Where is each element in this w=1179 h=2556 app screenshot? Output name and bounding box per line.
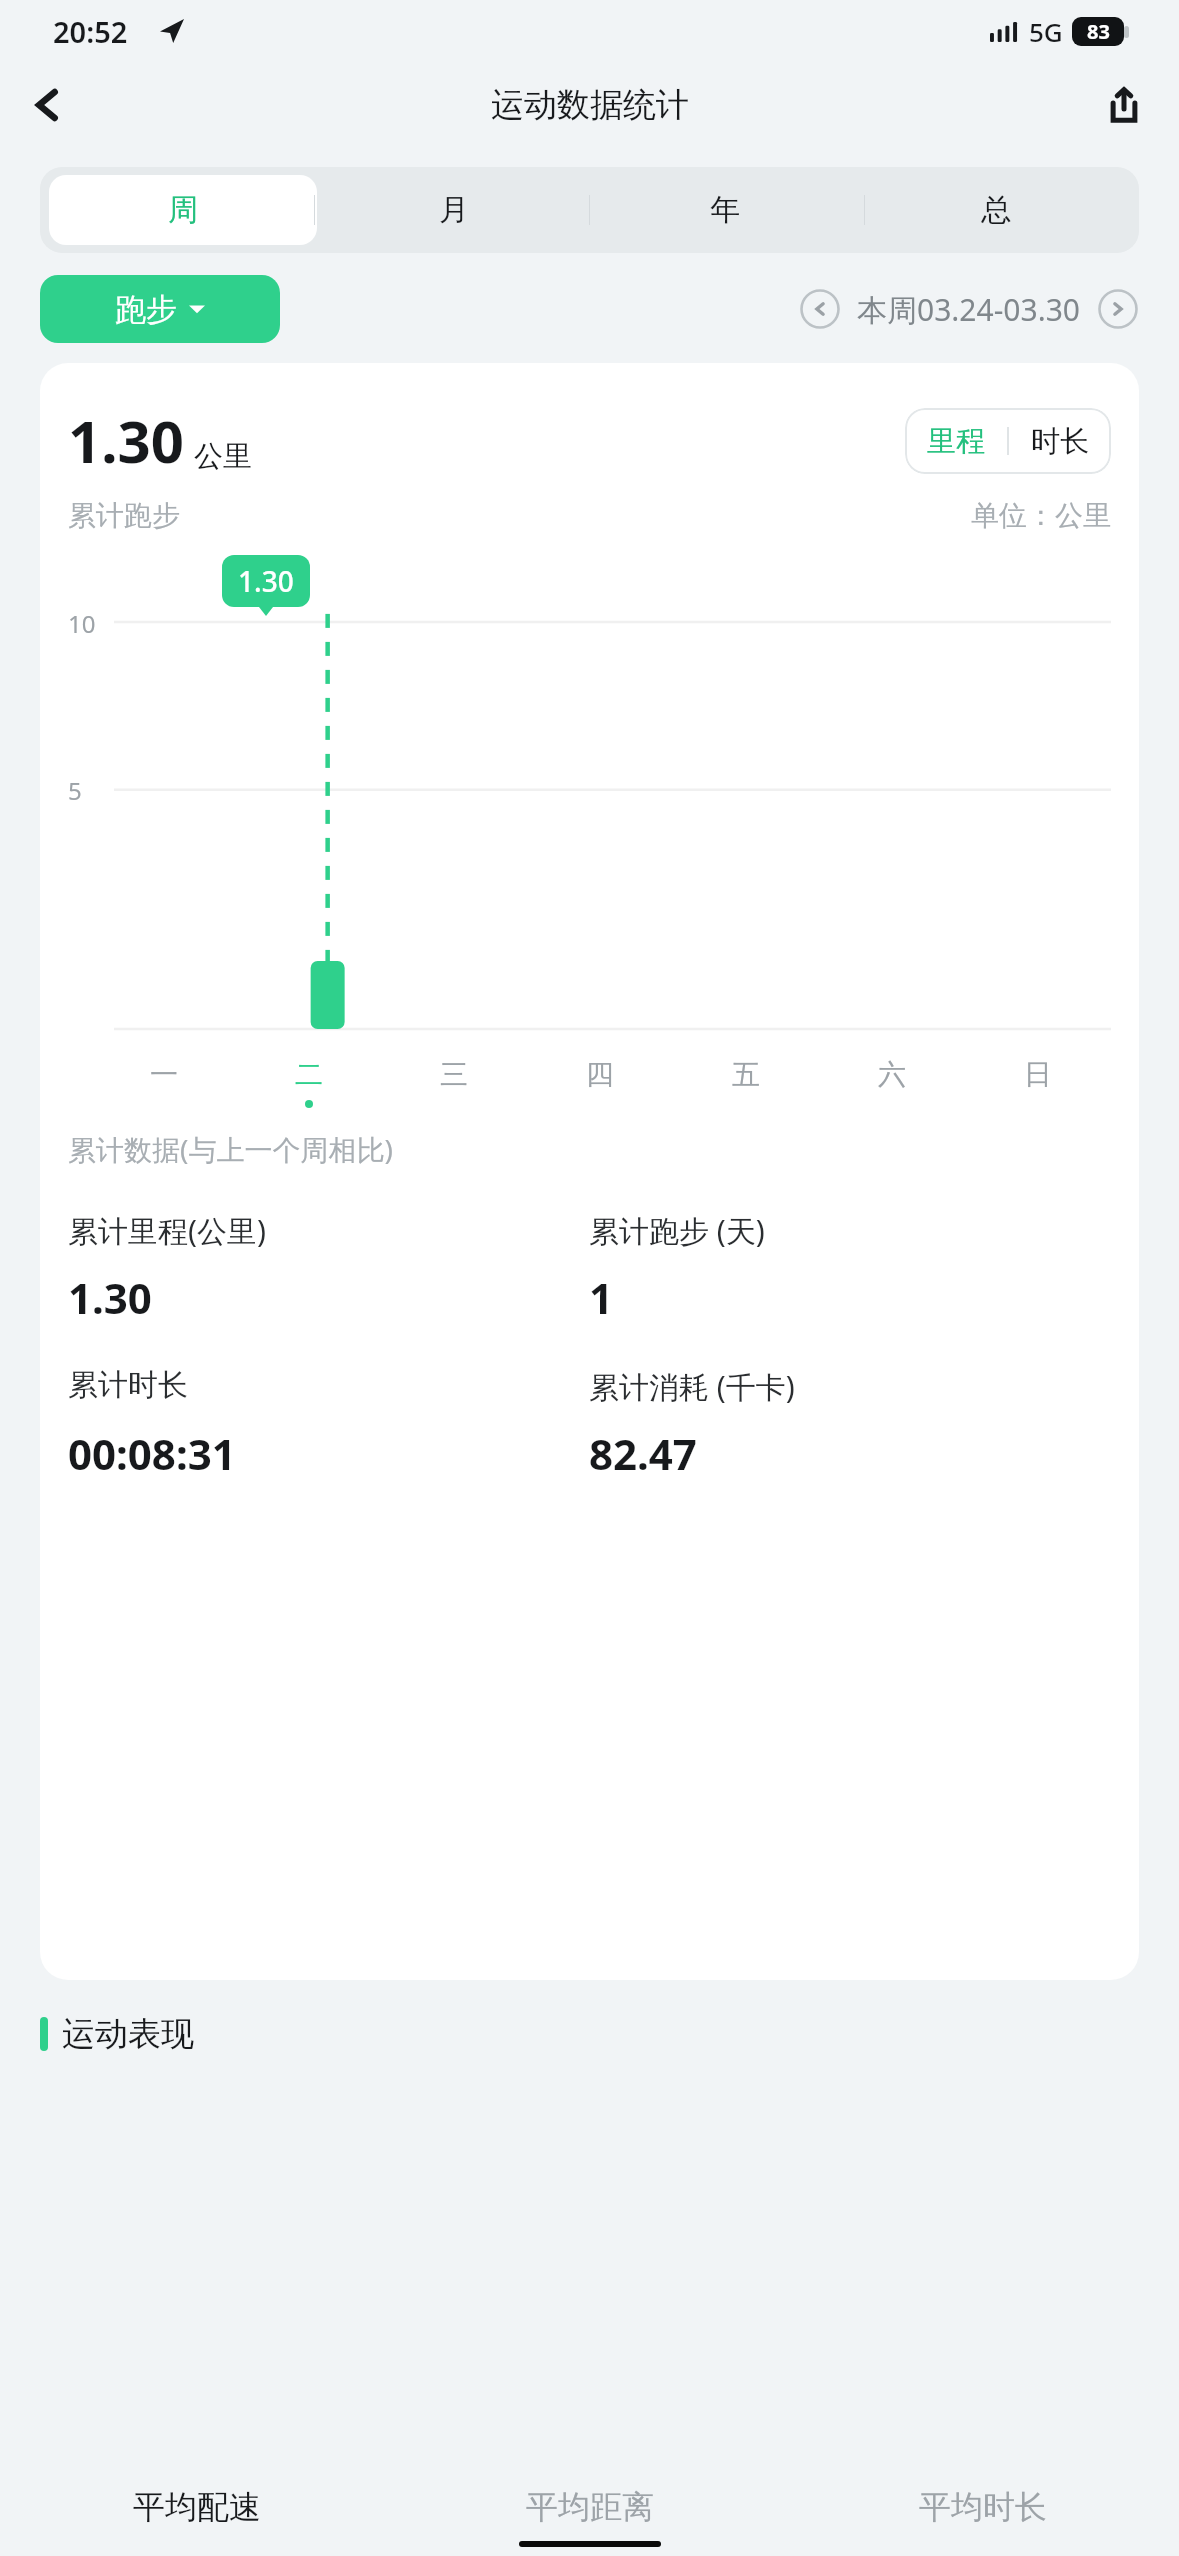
staticText: 五 [732, 1057, 760, 1092]
staticText: 公里 [194, 438, 252, 475]
staticText: 三 [440, 1057, 468, 1092]
button[interactable]: 平均时长 [786, 2472, 1179, 2542]
button[interactable]: Back [20, 76, 78, 134]
button[interactable]: Share [1095, 76, 1153, 134]
staticText: 平均时长 [919, 2487, 1047, 2527]
staticText: 平均配速 [133, 2487, 261, 2527]
button[interactable]: Next week [1097, 288, 1139, 330]
staticText: 5G [1029, 14, 1063, 49]
staticText: 82.47 [589, 1425, 1111, 1482]
staticText: 时长 [1031, 423, 1089, 460]
staticText: 六 [878, 1057, 906, 1092]
staticText: 1 [589, 1269, 1111, 1326]
staticText: 周 [168, 191, 198, 229]
staticText: 运动数据统计 [491, 84, 689, 126]
staticText: 运动表现 [62, 2013, 194, 2055]
staticText: 累计跑步 (天) [589, 1210, 1111, 1251]
button[interactable]: 周 [49, 175, 317, 245]
staticText: 里程 [927, 423, 985, 460]
staticText: 四 [586, 1057, 614, 1092]
staticText: 累计跑步 [68, 498, 180, 533]
staticText: 10 [68, 607, 96, 640]
button[interactable]: 年 [590, 175, 859, 245]
staticText: 年 [710, 191, 740, 229]
button[interactable]: 平均距离 [393, 2472, 786, 2542]
button[interactable]: 总 [861, 175, 1130, 245]
button[interactable]: 跑步 [40, 275, 280, 343]
staticText: 一 [150, 1057, 178, 1092]
staticText: 1.30 [68, 1269, 589, 1326]
staticText: 日 [1024, 1057, 1052, 1092]
staticText: 累计里程(公里) [68, 1210, 589, 1251]
staticText: 总 [981, 191, 1011, 229]
staticText: 00:08:31 [68, 1425, 589, 1482]
button[interactable]: 月 [319, 175, 588, 245]
staticText: 平均距离 [526, 2487, 654, 2527]
button[interactable]: 平均配速 [0, 2472, 393, 2542]
staticText: 月 [439, 191, 469, 229]
button[interactable]: Previous week [799, 288, 841, 330]
button[interactable]: 时长 [1031, 408, 1089, 474]
staticText: 跑步 [115, 290, 177, 329]
staticText: 累计消耗 (千卡) [589, 1366, 1111, 1407]
staticText: 本周03.24-03.30 [857, 289, 1081, 330]
staticText: 20:52 [53, 12, 128, 51]
button[interactable]: 里程 [927, 408, 985, 474]
staticText: 1.30 [68, 401, 184, 480]
staticText: 单位：公里 [971, 498, 1111, 533]
staticText: 1.30 [238, 562, 294, 600]
staticText: 二 [295, 1057, 323, 1092]
staticText: 5 [68, 774, 82, 807]
staticText: 83 [1087, 18, 1110, 45]
staticText: 累计数据(与上一个周相比) [68, 1130, 393, 1168]
staticText: 累计时长 [68, 1366, 589, 1404]
